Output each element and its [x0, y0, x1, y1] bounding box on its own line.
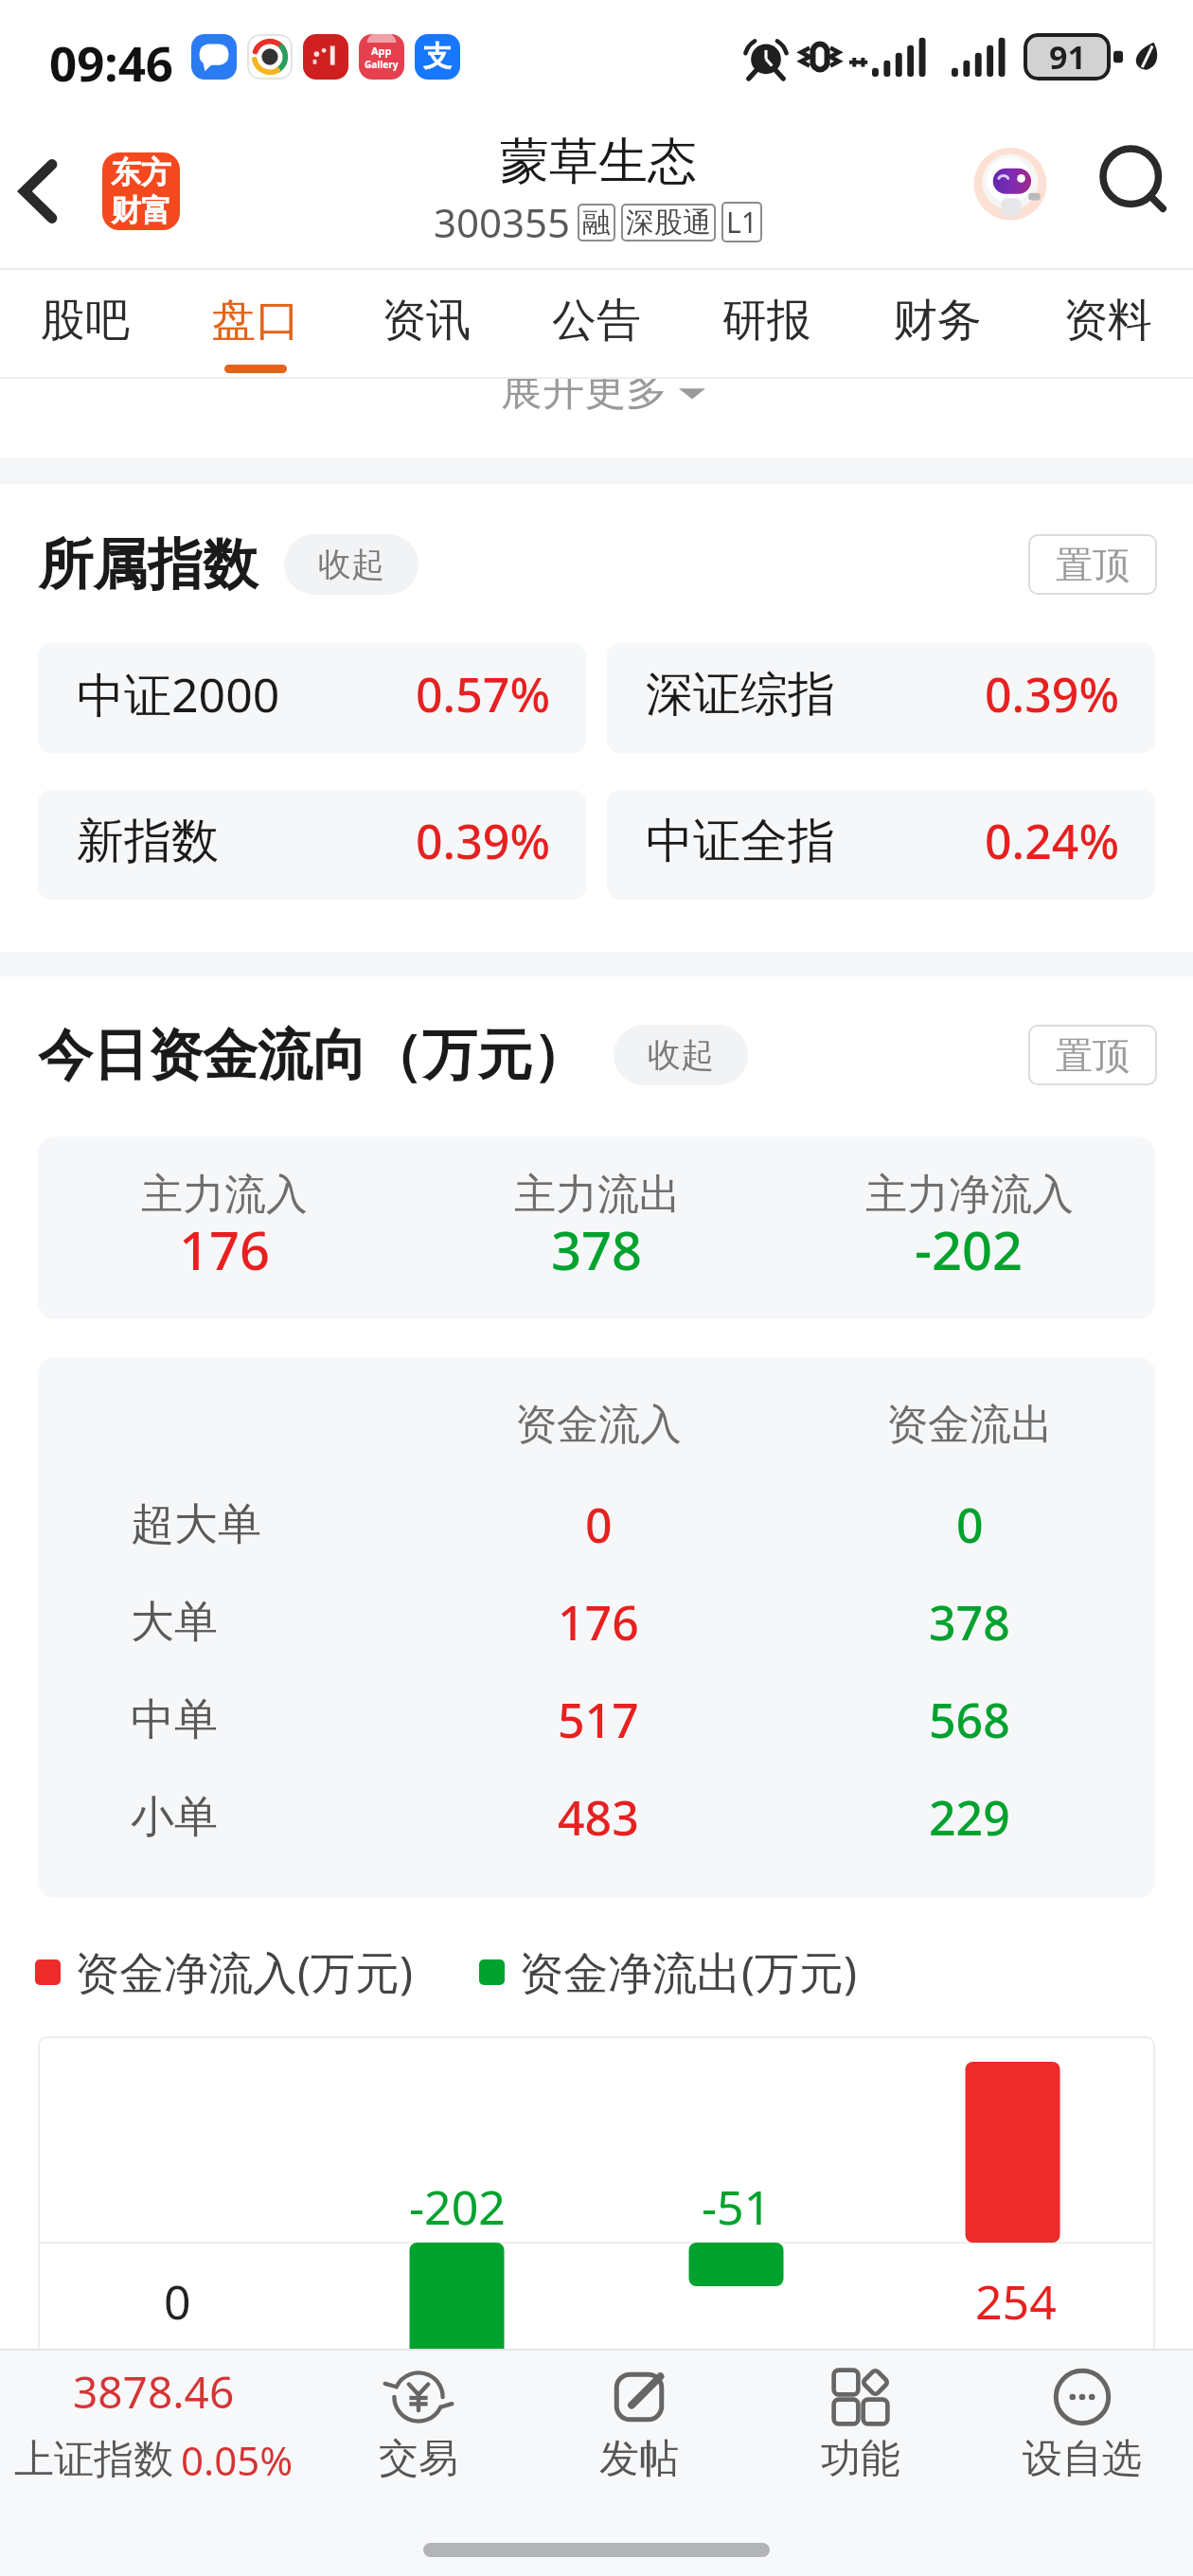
staticText: 所属指数 [38, 530, 258, 599]
staticText: 176 [179, 1213, 271, 1285]
staticText: 蒙草生态 [500, 131, 697, 193]
staticText: 资金流出 [886, 1399, 1053, 1451]
staticText: 交易 [379, 2434, 458, 2484]
staticText: 229 [929, 1785, 1010, 1850]
staticText: 财务 [893, 293, 982, 349]
staticText: 东方 [111, 153, 171, 191]
button[interactable]: 中证2000 [38, 643, 586, 753]
staticText: 378 [551, 1213, 643, 1285]
button[interactable]: 置顶 [1028, 1025, 1157, 1085]
staticText: 3878.46 [73, 2362, 235, 2422]
staticText: 资讯 [382, 293, 471, 349]
staticText: 深股通 [626, 205, 711, 241]
staticText: 中证2000 [77, 662, 280, 726]
staticText: 置顶 [1056, 1032, 1130, 1079]
button[interactable]: 盘口 [170, 270, 341, 377]
button[interactable]: Back [5, 155, 77, 227]
staticText: 功能 [821, 2434, 900, 2484]
staticText: 发帖 [599, 2434, 679, 2484]
button[interactable]: 3878.46 [0, 2351, 308, 2498]
staticText: 今日资金流向（万元） [38, 1021, 587, 1090]
staticText: -202 [409, 2174, 506, 2239]
staticText: 0.39% [985, 662, 1119, 726]
staticText: 收起 [648, 1034, 714, 1076]
button[interactable]: 功能 [750, 2351, 971, 2498]
staticText: App [371, 44, 392, 58]
button[interactable]: 设自选 [971, 2351, 1193, 2498]
staticText: -202 [915, 1213, 1024, 1285]
staticText: 深证综指 [646, 665, 835, 724]
staticText: 378 [929, 1590, 1010, 1655]
staticText: 254 [975, 2269, 1057, 2334]
staticText: -51 [702, 2174, 772, 2239]
button[interactable]: 收起 [284, 534, 418, 595]
button[interactable]: 发帖 [528, 2351, 750, 2498]
button[interactable]: 财务 [852, 270, 1023, 377]
staticText: 0.39% [416, 809, 550, 873]
staticText: 支 [423, 39, 452, 75]
staticText: 股吧 [41, 293, 130, 349]
staticText: 483 [558, 1785, 639, 1850]
staticText: 设自选 [1023, 2434, 1142, 2484]
button[interactable]: 资料 [1023, 270, 1193, 377]
staticText: 新指数 [77, 812, 219, 871]
staticText: 置顶 [1056, 542, 1130, 588]
staticText: 0 [585, 1493, 613, 1557]
staticText: 0.57% [416, 662, 550, 726]
staticText: 0 [956, 1493, 984, 1557]
staticText: 盘口 [211, 293, 300, 349]
staticText: 超大单 [131, 1497, 261, 1552]
staticText: 资金净流入(万元) [75, 1941, 414, 2002]
staticText: 主力流入 [141, 1169, 308, 1221]
staticText: 09:46 [49, 29, 174, 95]
staticText: 资金净流出(万元) [519, 1941, 858, 2002]
button[interactable]: 研报 [682, 270, 852, 377]
staticText: 517 [558, 1688, 639, 1752]
staticText: 300355 [434, 195, 571, 249]
staticText: 上证指数 [14, 2435, 173, 2485]
button[interactable]: Search [1097, 143, 1173, 219]
staticText: 大单 [131, 1595, 218, 1650]
staticText: 资金流入 [515, 1399, 682, 1451]
staticText: 568 [929, 1688, 1010, 1752]
staticText: 收起 [318, 544, 384, 585]
staticText: 0.24% [985, 809, 1119, 873]
staticText: 财富 [111, 191, 171, 229]
button[interactable]: AI assistant [965, 142, 1056, 233]
button[interactable]: 公告 [511, 270, 682, 377]
staticText: 小单 [131, 1790, 218, 1845]
staticText: 融 [582, 205, 611, 241]
button[interactable]: 置顶 [1028, 534, 1157, 595]
staticText: 主力流出 [514, 1169, 681, 1221]
button[interactable]: 东方 [102, 152, 180, 230]
staticText: 91 [1049, 35, 1086, 79]
button[interactable]: 深证综指 [607, 643, 1155, 753]
staticText: 中证全指 [646, 812, 835, 871]
staticText: 研报 [722, 293, 811, 349]
button[interactable]: 股吧 [0, 270, 170, 377]
button[interactable]: 展开更多 [501, 365, 705, 417]
staticText: 展开更多 [501, 365, 668, 417]
staticText: 资料 [1063, 293, 1152, 349]
staticText: 主力净流入 [865, 1169, 1074, 1221]
button[interactable]: 中证全指 [607, 790, 1155, 900]
staticText: 176 [558, 1590, 639, 1655]
button[interactable]: 收起 [614, 1025, 748, 1085]
staticText: Gallery [365, 58, 399, 71]
staticText: L1 [726, 203, 757, 241]
staticText: 中单 [131, 1692, 218, 1747]
button[interactable]: 交易 [308, 2351, 528, 2498]
staticText: 0.05% [181, 2433, 294, 2487]
staticText: 0 [164, 2269, 191, 2334]
button[interactable]: 新指数 [38, 790, 586, 900]
button[interactable]: 资讯 [341, 270, 511, 377]
staticText: 公告 [552, 293, 641, 349]
